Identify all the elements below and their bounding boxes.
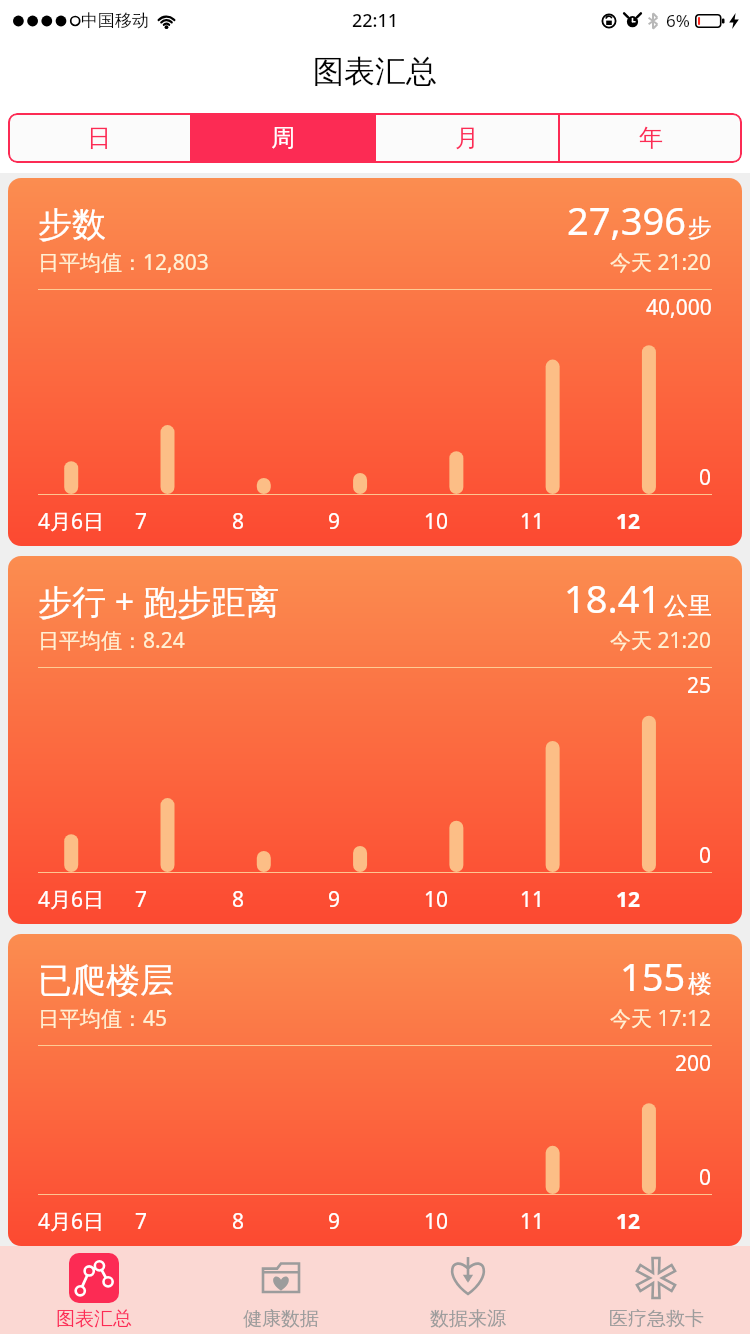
- staticText: 月: [455, 123, 479, 153]
- staticText: 健康数据: [243, 1307, 319, 1331]
- staticText: 9: [328, 507, 341, 536]
- staticText: 4月6日: [38, 1207, 105, 1236]
- other: 图表汇总: [69, 1253, 119, 1303]
- staticText: 11: [520, 885, 545, 914]
- button[interactable]: 医疗急救卡: [562, 1246, 750, 1334]
- staticText: 4月6日: [38, 507, 105, 536]
- staticText: 图表汇总: [56, 1307, 132, 1331]
- button[interactable]: 图表汇总: [0, 1246, 187, 1334]
- staticText: 18.41: [564, 572, 662, 624]
- button[interactable]: 月: [376, 113, 558, 163]
- other: 医疗急救卡: [631, 1253, 681, 1303]
- staticText: 10: [424, 1207, 449, 1236]
- staticText: 6%: [666, 9, 690, 32]
- staticText: 公里: [664, 591, 712, 621]
- staticText: 155: [620, 950, 686, 1002]
- staticText: 步: [688, 213, 712, 243]
- staticText: 0: [699, 841, 712, 870]
- staticText: 9: [328, 885, 341, 914]
- staticText: 7: [135, 1207, 148, 1236]
- staticText: 图表汇总: [313, 52, 437, 91]
- staticText: 10: [424, 507, 449, 536]
- staticText: 10: [424, 885, 449, 914]
- staticText: 日平均值：8.24: [38, 626, 185, 655]
- staticText: 医疗急救卡: [609, 1307, 704, 1331]
- staticText: 7: [135, 885, 148, 914]
- staticText: 日平均值：12,803: [38, 248, 209, 277]
- staticText: 周: [271, 123, 295, 153]
- staticText: 25: [687, 671, 712, 700]
- staticText: 4月6日: [38, 885, 105, 914]
- staticText: 今天 21:20: [610, 248, 712, 277]
- button[interactable]: 年: [560, 113, 742, 163]
- staticText: 今天 21:20: [610, 626, 712, 655]
- staticText: 中国移动: [81, 10, 149, 31]
- staticText: 步行 + 跑步距离: [38, 578, 280, 624]
- button[interactable]: 已爬楼层: [8, 934, 742, 1246]
- staticText: 22:11: [352, 8, 399, 33]
- button[interactable]: 健康数据: [187, 1246, 374, 1334]
- staticText: 今天 17:12: [610, 1004, 712, 1033]
- button[interactable]: 步数: [8, 178, 742, 546]
- staticText: 11: [520, 1207, 545, 1236]
- staticText: 步数: [38, 203, 106, 246]
- staticText: 27,396: [567, 194, 686, 246]
- button[interactable]: 周: [192, 113, 374, 163]
- staticText: 日平均值：45: [38, 1004, 168, 1033]
- button[interactable]: 日: [8, 113, 190, 163]
- staticText: 8: [232, 507, 245, 536]
- staticText: 日: [87, 123, 111, 153]
- staticText: 0: [699, 1163, 712, 1192]
- staticText: 已爬楼层: [38, 959, 174, 1002]
- other: 数据来源: [443, 1253, 493, 1303]
- staticText: 数据来源: [430, 1307, 506, 1331]
- staticText: 8: [232, 885, 245, 914]
- staticText: 40,000: [646, 293, 712, 322]
- staticText: 8: [232, 1207, 245, 1236]
- staticText: 年: [639, 123, 663, 153]
- staticText: 7: [135, 507, 148, 536]
- button[interactable]: 数据来源: [374, 1246, 562, 1334]
- button[interactable]: 步行 + 跑步距离: [8, 556, 742, 924]
- staticText: 楼: [688, 969, 712, 999]
- staticText: 12: [616, 507, 641, 536]
- staticText: 12: [616, 885, 641, 914]
- staticText: 9: [328, 1207, 341, 1236]
- staticText: 200: [675, 1049, 712, 1078]
- staticText: 11: [520, 507, 545, 536]
- other: 健康数据: [256, 1253, 306, 1303]
- staticText: 12: [616, 1207, 641, 1236]
- staticText: 0: [699, 463, 712, 492]
